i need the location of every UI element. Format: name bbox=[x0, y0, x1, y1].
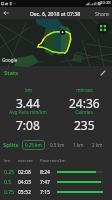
staticText: Stats bbox=[4, 69, 19, 77]
button[interactable]: min:sec bbox=[56, 87, 112, 109]
staticText: 02:06 bbox=[18, 169, 40, 176]
staticText: min:sec bbox=[76, 87, 93, 93]
staticText: 0.25 km bbox=[25, 142, 42, 148]
staticText: 0.5 km bbox=[50, 142, 65, 148]
button[interactable]: Edit stats bbox=[98, 68, 108, 78]
staticText: 24:36 bbox=[69, 95, 100, 109]
button[interactable]: 0.5 km bbox=[47, 140, 68, 150]
button[interactable]: 1 km bbox=[70, 140, 87, 150]
button[interactable]: 0.5 bbox=[4, 177, 109, 187]
staticText: km bbox=[4, 158, 18, 164]
staticText: Dec. 6, 2018 at 07:38 bbox=[30, 10, 81, 17]
button[interactable]: 2 km bbox=[89, 140, 106, 150]
staticText: km bbox=[25, 87, 32, 93]
staticText: 0.5 bbox=[4, 179, 18, 186]
staticText: 0.75 bbox=[4, 189, 18, 196]
staticText: 20:38 bbox=[100, 0, 111, 6]
button[interactable]: Expand map bbox=[97, 22, 109, 34]
staticText: 7:08 bbox=[16, 117, 40, 132]
staticText: Google bbox=[2, 57, 18, 63]
staticText: Pace min/km bbox=[40, 158, 66, 164]
staticText: 0.25 bbox=[4, 169, 18, 176]
staticText: 04:03 bbox=[18, 179, 40, 186]
staticText: Splits bbox=[3, 141, 19, 149]
button[interactable]: Calories bbox=[56, 109, 112, 132]
staticText: Calories bbox=[75, 109, 93, 115]
button[interactable]: 0.25 km bbox=[22, 140, 45, 150]
button[interactable]: Back bbox=[0, 7, 12, 19]
button[interactable]: 0.75 bbox=[4, 187, 109, 197]
staticText: 1 km bbox=[73, 142, 84, 148]
staticText: 05:52 bbox=[18, 189, 40, 196]
button[interactable]: km bbox=[0, 87, 56, 109]
button[interactable]: 0.25 bbox=[4, 167, 109, 177]
staticText: 8:24 bbox=[40, 169, 54, 176]
staticText: Share bbox=[95, 10, 109, 17]
staticText: min:sec bbox=[18, 158, 40, 164]
staticText: 7:47 bbox=[40, 179, 54, 186]
staticText: 2 km bbox=[92, 142, 103, 148]
button[interactable]: Avg Pace min/km bbox=[0, 109, 56, 132]
staticText: 3.44 bbox=[16, 95, 40, 109]
button[interactable]: Share bbox=[92, 10, 112, 17]
staticText: 7:15 bbox=[40, 189, 54, 196]
staticText: 235 bbox=[74, 117, 95, 132]
staticText: Avg Pace min/km bbox=[9, 109, 47, 115]
